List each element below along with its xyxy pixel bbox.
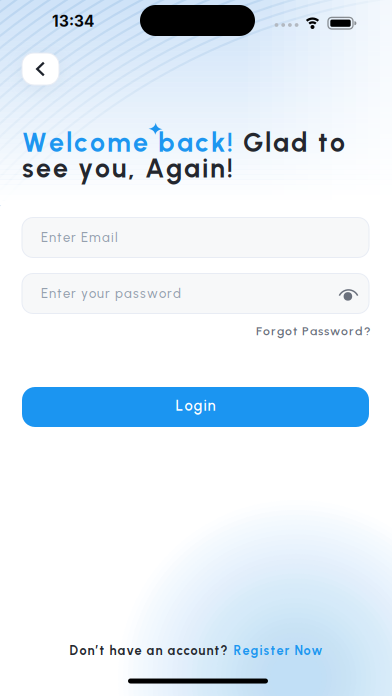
staticText: s e e y o u , A g a i n ! [22, 152, 233, 184]
staticText: G l a d t o [233, 126, 345, 158]
button[interactable]: R e g i s t e r N o w [233, 643, 322, 658]
staticText: D o n ’ t h a v e a n a c c o u n t ? [69, 643, 227, 658]
staticText: L o g i n [175, 397, 215, 414]
staticText: 13:34 [52, 12, 94, 31]
button[interactable]: F o r g o t P a s s w o r d ? [256, 323, 371, 338]
button[interactable]: Back [22, 53, 59, 85]
staticText: R e g i s t e r N o w [233, 643, 322, 658]
staticText: E n t e r y o u r p a s s w o r d [41, 286, 181, 301]
button[interactable]: L o g i n [22, 387, 369, 427]
staticText: W e l c o m e b a c k ! [22, 126, 233, 158]
staticText: F o r g o t P a s s w o r d ? [256, 323, 371, 338]
button[interactable]: Show password [338, 282, 359, 304]
staticText: E n t e r E m a i l [41, 230, 118, 245]
